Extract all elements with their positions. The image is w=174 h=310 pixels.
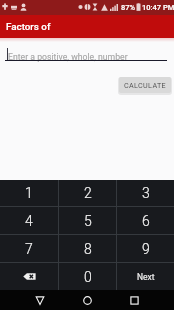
staticText: 4: [25, 213, 33, 229]
staticText: 2: [84, 185, 92, 201]
button[interactable]: 2: [59, 180, 116, 206]
button[interactable]: 3: [117, 180, 174, 206]
button[interactable]: Backspace: [0, 263, 58, 290]
button[interactable]: Next: [117, 263, 174, 290]
staticText: Next: [137, 272, 155, 282]
staticText: 5: [84, 213, 92, 229]
button[interactable]: Back: [22, 290, 58, 310]
button[interactable]: Home: [69, 290, 105, 310]
staticText: 87%: [121, 3, 136, 12]
button[interactable]: CALCULATE: [119, 77, 171, 93]
button[interactable]: 9: [117, 235, 174, 262]
button[interactable]: Recents: [116, 290, 152, 310]
staticText: 8: [84, 241, 92, 257]
staticText: 0: [84, 269, 92, 285]
staticText: Enter a positive, whole, number: [8, 52, 128, 62]
button[interactable]: 4: [0, 207, 58, 234]
staticText: 6: [142, 213, 150, 229]
staticText: 7: [25, 241, 33, 257]
button[interactable]: 0: [59, 263, 116, 290]
staticText: 3: [142, 185, 150, 201]
button[interactable]: 7: [0, 235, 58, 262]
staticText: 10:47 PM: [142, 3, 174, 12]
button[interactable]: 1: [0, 180, 58, 206]
staticText: CALCULATE: [124, 81, 167, 89]
button[interactable]: 6: [117, 207, 174, 234]
button[interactable]: 5: [59, 207, 116, 234]
staticText: 1: [25, 185, 33, 201]
button[interactable]: 8: [59, 235, 116, 262]
staticText: Factors of: [6, 21, 51, 32]
staticText: 9: [142, 241, 150, 257]
